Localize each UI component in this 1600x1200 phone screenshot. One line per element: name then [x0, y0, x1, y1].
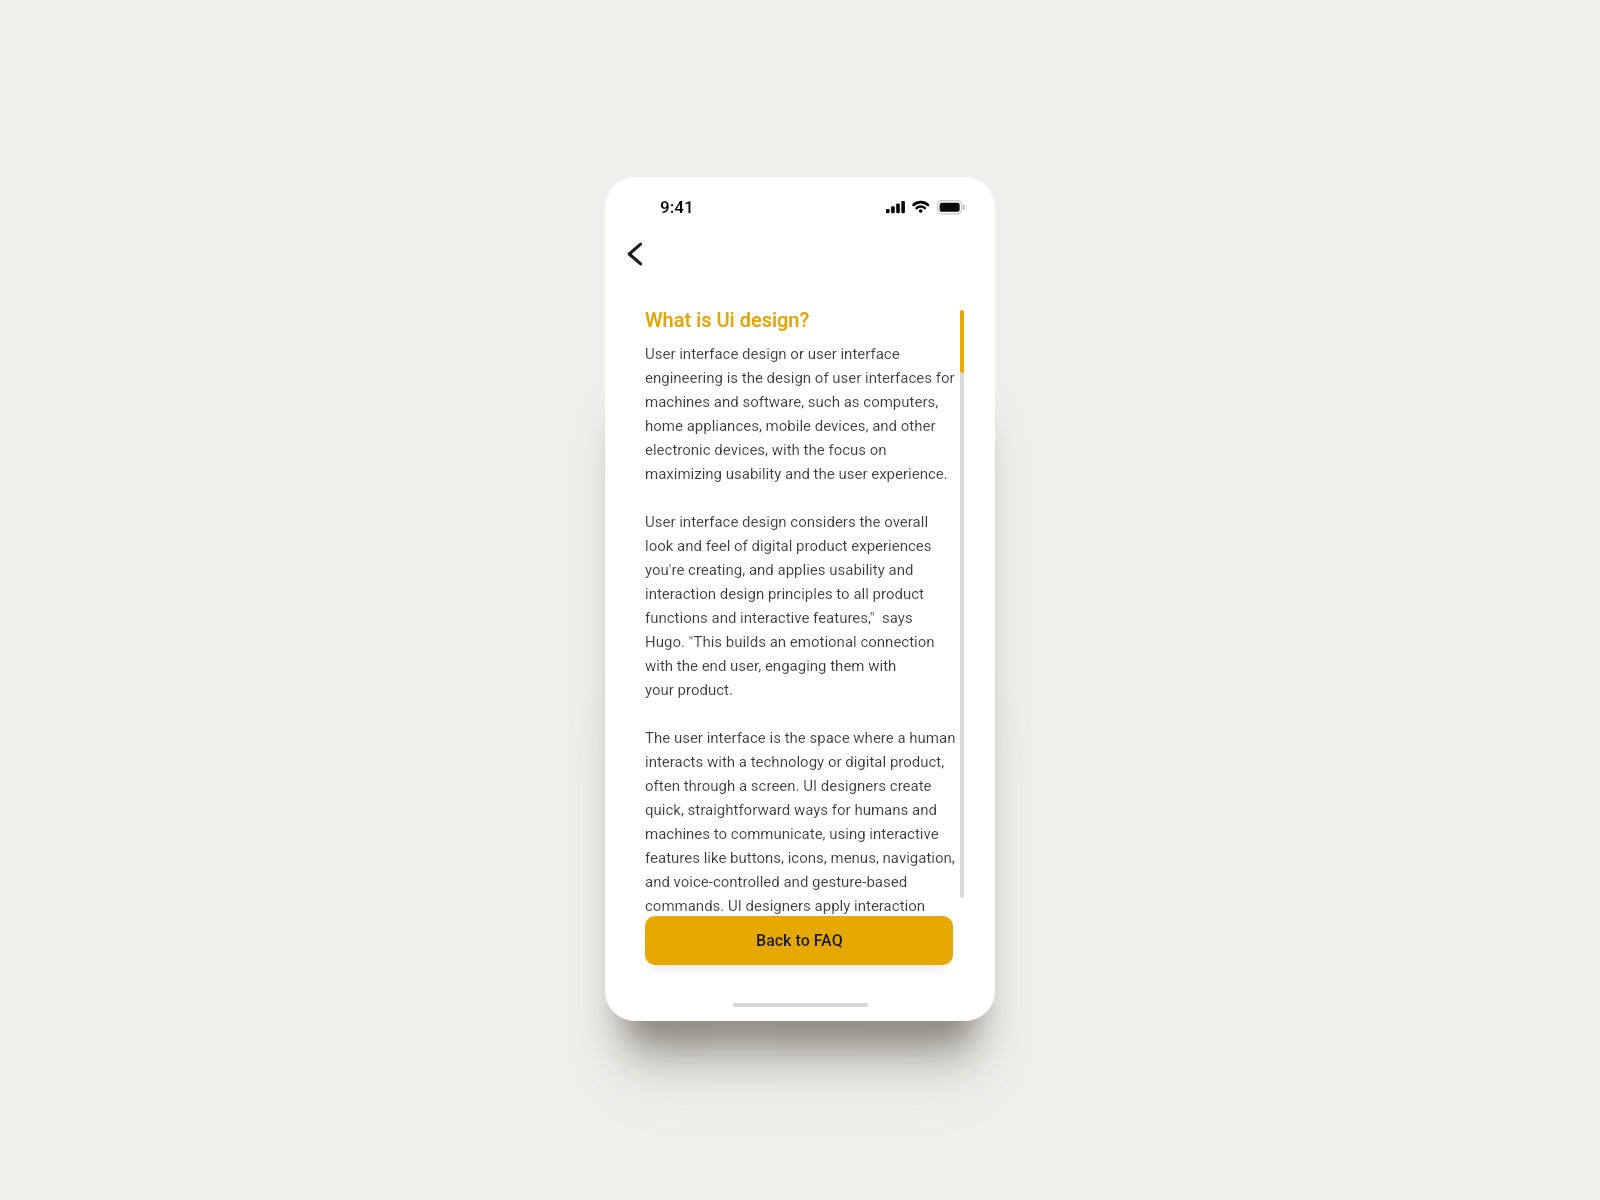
button[interactable]: Back	[611, 232, 659, 276]
button[interactable]: Back to FAQ	[645, 916, 953, 965]
staticText: 9:41	[660, 197, 694, 217]
staticText: Back to FAQ	[756, 931, 843, 950]
staticText: User interface design or user interface …	[645, 345, 958, 915]
staticText: What is Ui design?	[645, 308, 810, 331]
